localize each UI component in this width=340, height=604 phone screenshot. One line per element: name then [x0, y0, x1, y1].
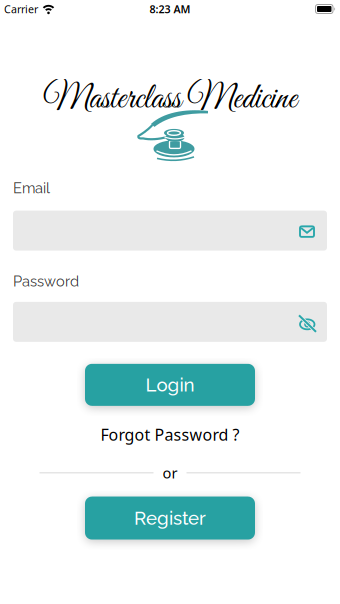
staticText: or	[162, 463, 177, 483]
staticText: Masterclass Medicine	[43, 78, 297, 121]
button[interactable]: Email	[13, 211, 327, 251]
button[interactable]: Password	[13, 302, 327, 342]
staticText: Password	[13, 273, 79, 290]
button[interactable]: Login	[85, 364, 255, 406]
staticText: Forgot Password ?	[100, 424, 239, 445]
staticText: Register	[134, 507, 206, 529]
staticText: Carrier	[4, 2, 38, 16]
staticText: Login	[145, 374, 194, 396]
button[interactable]: Register	[85, 497, 255, 540]
button[interactable]: Forgot Password ?	[100, 424, 239, 445]
staticText: Email	[13, 179, 50, 197]
staticText: 8:23 AM	[149, 2, 190, 16]
